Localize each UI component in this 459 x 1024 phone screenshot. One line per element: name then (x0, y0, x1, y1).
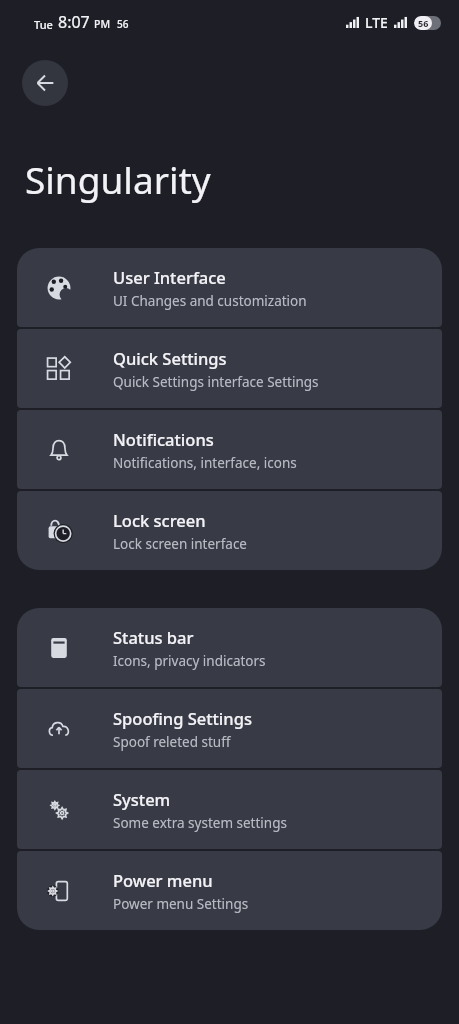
button[interactable]: Quick Settings (17, 329, 442, 408)
staticText: Singularity (25, 154, 211, 204)
staticText: Spoofing Settings (113, 707, 252, 729)
staticText: Tue (34, 17, 53, 32)
staticText: User Interface (113, 266, 226, 288)
staticText: 56 (117, 17, 129, 31)
staticText: Power menu Settings (113, 895, 249, 913)
button[interactable]: Lock screen (17, 491, 442, 570)
staticText: Power menu (113, 869, 213, 891)
button[interactable]: Power menu (17, 851, 442, 930)
button[interactable]: Back (22, 60, 68, 106)
staticText: Lock screen interface (113, 535, 247, 553)
staticText: Lock screen (113, 509, 206, 531)
staticText: System (113, 788, 171, 810)
staticText: Some extra system settings (113, 814, 287, 832)
staticText: Quick Settings (113, 347, 227, 369)
staticText: 56 (418, 17, 429, 29)
button[interactable]: User Interface (17, 248, 442, 327)
staticText: Status bar (113, 626, 194, 648)
staticText: Notifications (113, 428, 214, 450)
button[interactable]: Notifications (17, 410, 442, 489)
staticText: PM (94, 17, 111, 31)
staticText: Spoof releted stuff (113, 733, 231, 751)
staticText: UI Changes and customization (113, 292, 307, 310)
staticText: Icons, privacy indicators (113, 652, 266, 670)
button[interactable]: Spoofing Settings (17, 689, 442, 768)
staticText: LTE (365, 13, 388, 32)
staticText: 8:07 (58, 11, 90, 33)
button[interactable]: Status bar (17, 608, 442, 687)
staticText: Notifications, interface, icons (113, 454, 297, 472)
button[interactable]: System (17, 770, 442, 849)
staticText: Quick Settings interface Settings (113, 373, 319, 391)
